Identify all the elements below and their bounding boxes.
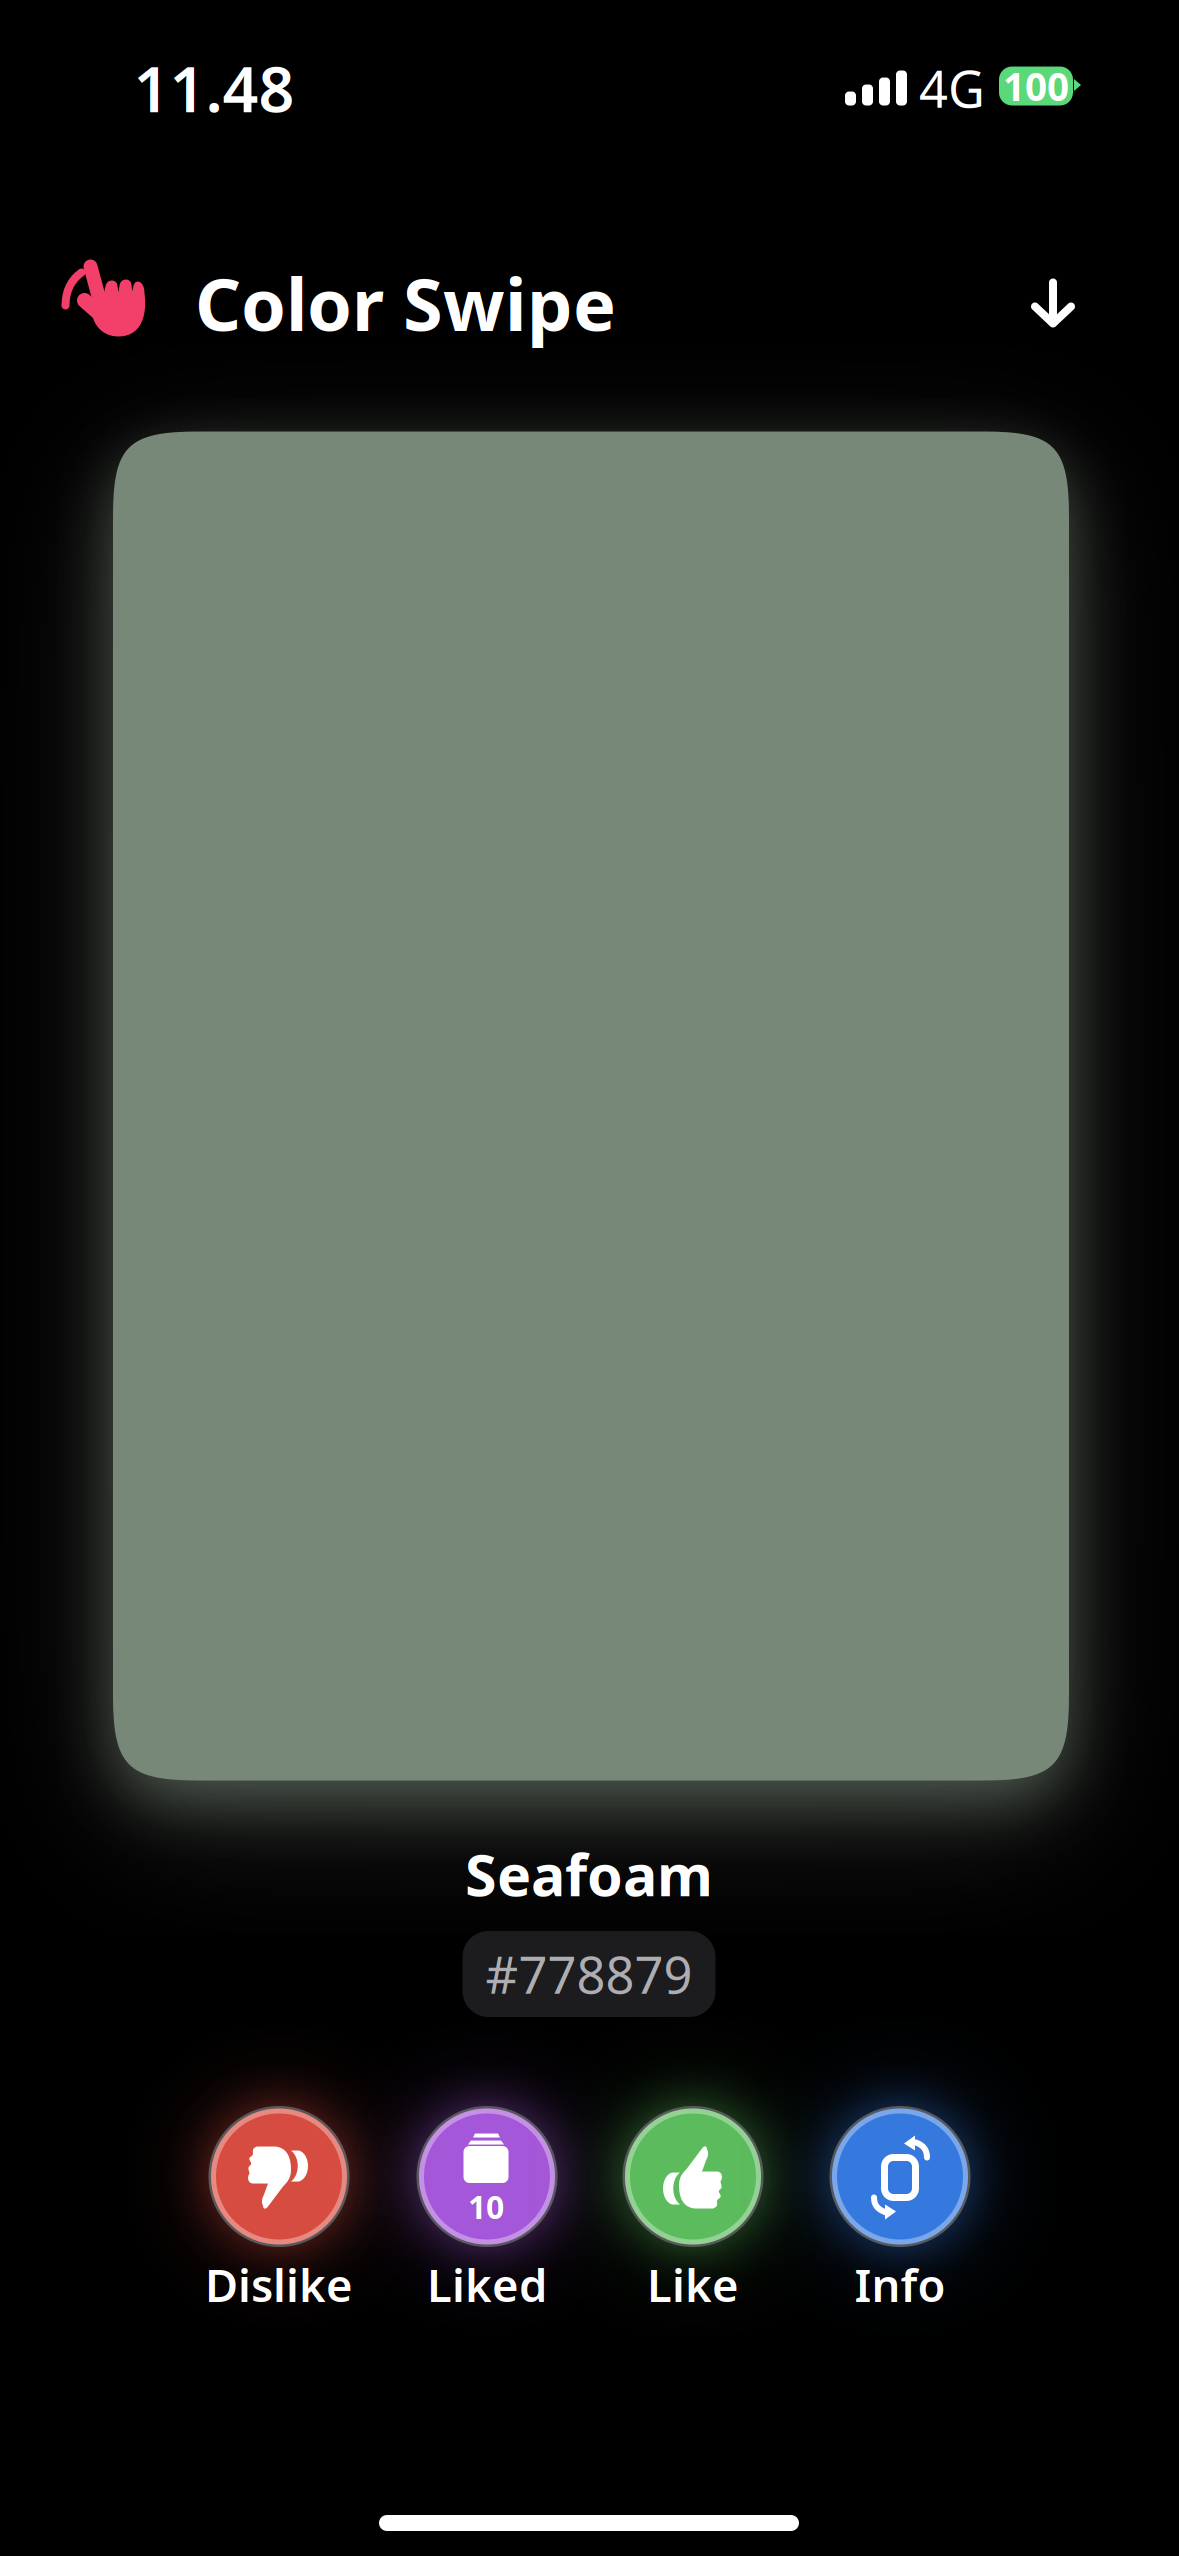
staticText: Seafoam <box>465 1836 713 1912</box>
staticText: 10 <box>468 2185 504 2228</box>
button[interactable]: Info <box>800 2106 1000 2321</box>
staticText: #778879 <box>485 1940 692 2008</box>
button[interactable]: 10 <box>387 2106 587 2321</box>
staticText: Liked <box>427 2254 547 2315</box>
button[interactable]: Like <box>593 2106 793 2321</box>
button[interactable]: Save colour <box>998 248 1108 358</box>
staticText: Like <box>647 2254 739 2315</box>
staticText: Color Swipe <box>195 255 616 351</box>
staticText: Info <box>854 2254 945 2315</box>
button[interactable]: Dislike <box>179 2106 379 2321</box>
staticText: Dislike <box>205 2254 353 2315</box>
staticText: 11.48 <box>133 46 294 130</box>
staticText: 4G <box>919 54 985 122</box>
staticText: 100 <box>1003 60 1069 112</box>
